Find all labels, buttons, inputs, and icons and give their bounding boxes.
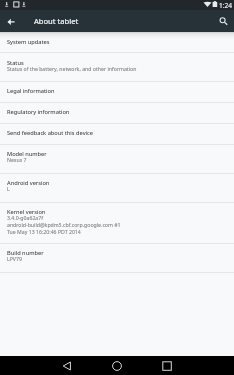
staticText: Legal information bbox=[7, 87, 55, 95]
staticText: Legal information bbox=[7, 87, 55, 95]
staticText: Regulatory information bbox=[7, 108, 70, 116]
staticText: System updates bbox=[7, 38, 50, 46]
button[interactable]: Back bbox=[57, 356, 77, 375]
staticText: About tablet bbox=[34, 16, 79, 26]
button[interactable]: Back bbox=[0, 11, 21, 32]
staticText: Android version bbox=[7, 179, 50, 187]
staticText: Status bbox=[7, 59, 24, 67]
button[interactable]: Kernel version bbox=[0, 202, 234, 243]
button[interactable]: Send feedback about this device bbox=[0, 123, 234, 144]
button[interactable]: Build number bbox=[0, 243, 234, 272]
button[interactable]: Model number bbox=[0, 144, 234, 173]
staticText: 3.4.0-g0a62a7f android-build@kpdm5.cbf.c… bbox=[7, 214, 121, 235]
staticText: 3.4.0-g0a62a7f android-build@kpdm5.cbf.c… bbox=[7, 214, 121, 235]
button[interactable]: Home bbox=[107, 356, 127, 375]
staticText: Send feedback about this device bbox=[7, 129, 93, 137]
button[interactable]: Status bbox=[0, 53, 234, 82]
staticText: Regulatory information bbox=[7, 108, 70, 116]
staticText: System updates bbox=[7, 38, 50, 46]
button[interactable]: Legal information bbox=[0, 81, 234, 102]
button[interactable]: Regulatory information bbox=[0, 102, 234, 123]
staticText: Status of the battery, network, and othe… bbox=[7, 65, 137, 72]
staticText: Model number bbox=[7, 150, 47, 158]
staticText: Status of the battery, network, and othe… bbox=[7, 65, 137, 72]
staticText: LPV79 bbox=[7, 255, 22, 262]
staticText: L bbox=[7, 185, 10, 192]
staticText: Model number bbox=[7, 150, 47, 158]
staticText: Nexus 7 bbox=[7, 156, 27, 163]
staticText: Status bbox=[7, 59, 24, 67]
staticText: Build number bbox=[7, 249, 44, 257]
staticText: Send feedback about this device bbox=[7, 129, 93, 137]
staticText: 1:24 bbox=[219, 1, 233, 10]
staticText: L bbox=[7, 185, 10, 192]
staticText: Build number bbox=[7, 249, 44, 257]
staticText: LPV79 bbox=[7, 255, 22, 262]
staticText: Android version bbox=[7, 179, 50, 187]
button[interactable]: Recents bbox=[157, 356, 177, 375]
staticText: Kernel version bbox=[7, 208, 46, 216]
staticText: Nexus 7 bbox=[7, 156, 27, 163]
staticText: Kernel version bbox=[7, 208, 46, 216]
button[interactable]: System updates bbox=[0, 32, 234, 53]
button[interactable]: Android version bbox=[0, 173, 234, 202]
button[interactable]: Search bbox=[213, 11, 234, 32]
